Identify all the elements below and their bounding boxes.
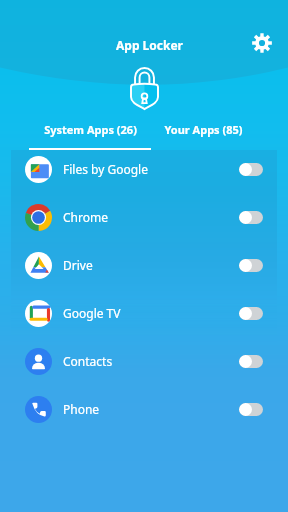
button[interactable]: Drive (11, 241, 277, 289)
button[interactable]: Toggle Drive (239, 259, 263, 272)
staticText: App Locker (116, 37, 183, 53)
button[interactable]: Files by Google (11, 145, 277, 193)
staticText: Phone (63, 401, 100, 417)
staticText: Files by Google (63, 161, 148, 177)
button[interactable]: Settings (244, 25, 280, 61)
button[interactable]: Your Apps (85) (151, 118, 256, 150)
button[interactable]: System Apps (26) (29, 118, 151, 150)
button[interactable]: Toggle Files by Google (239, 163, 263, 176)
staticText: System Apps (26) (44, 122, 137, 137)
button[interactable]: Toggle Phone (239, 403, 263, 416)
button[interactable]: Toggle Google TV (239, 307, 263, 320)
button[interactable]: Toggle Contacts (239, 355, 263, 368)
staticText: Your Apps (85) (164, 122, 243, 137)
staticText: Chrome (63, 209, 108, 225)
button[interactable]: Google TV (11, 289, 277, 337)
staticText: Drive (63, 257, 93, 273)
staticText: Google TV (63, 305, 121, 321)
button[interactable]: Contacts (11, 337, 277, 385)
button[interactable]: Chrome (11, 193, 277, 241)
button[interactable]: Toggle Chrome (239, 211, 263, 224)
staticText: Contacts (63, 353, 113, 369)
button[interactable]: Phone (11, 385, 277, 433)
